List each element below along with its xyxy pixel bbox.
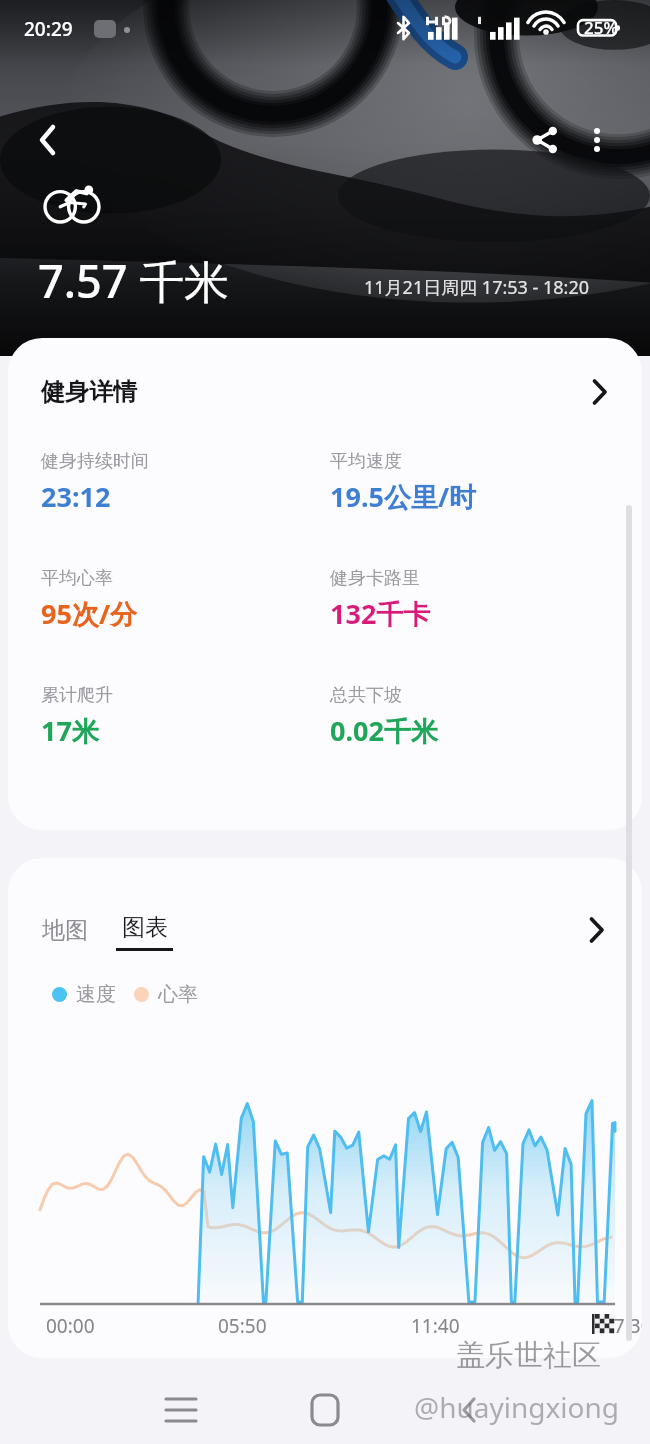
staticText: 25% — [584, 16, 618, 39]
staticText: 健身详情 — [41, 377, 137, 407]
staticText: 累计爬升 — [41, 684, 113, 707]
button[interactable]: Open chart — [572, 906, 620, 954]
button[interactable]: 健身详情 — [8, 338, 642, 446]
staticText: 健身持续时间 — [41, 450, 149, 473]
button[interactable]: 图表 — [116, 909, 173, 951]
button[interactable]: 地图 — [38, 910, 92, 951]
button[interactable]: Share — [517, 112, 573, 168]
staticText: 平均心率 — [41, 567, 113, 590]
staticText: 图表 — [122, 913, 168, 942]
button[interactable]: Back — [430, 1371, 508, 1444]
staticText: 速度 — [76, 982, 116, 1007]
staticText: 20:29 — [24, 16, 73, 42]
staticText: 11月21日周四 17:53 - 18:20 — [364, 275, 590, 300]
button[interactable]: Home — [286, 1371, 364, 1444]
staticText: 心率 — [158, 982, 198, 1007]
staticText: @huayingxiong — [414, 1388, 620, 1426]
staticText: 05:50 — [218, 1313, 267, 1339]
staticText: 17米 — [41, 712, 99, 749]
button[interactable]: Recent apps — [142, 1371, 220, 1444]
staticText: 0.02千米 — [330, 712, 438, 749]
button[interactable]: Back — [20, 112, 76, 168]
staticText: 00:00 — [46, 1313, 95, 1339]
staticText: 平均速度 — [330, 450, 402, 473]
staticText: 23:12 — [41, 478, 111, 515]
staticText: 盖乐世社区 — [456, 1337, 601, 1374]
staticText: 17:30 — [603, 1313, 642, 1339]
staticText: 19.5公里/时 — [330, 478, 477, 515]
staticText: 总共下坡 — [330, 684, 402, 707]
staticText: 7.57 千米 — [38, 250, 230, 311]
staticText: 11:40 — [411, 1313, 460, 1339]
staticText: 健身卡路里 — [330, 567, 420, 590]
staticText: 95次/分 — [41, 595, 138, 632]
staticText: 132千卡 — [330, 595, 431, 632]
button[interactable]: More options — [569, 112, 625, 168]
staticText: 地图 — [42, 916, 88, 945]
